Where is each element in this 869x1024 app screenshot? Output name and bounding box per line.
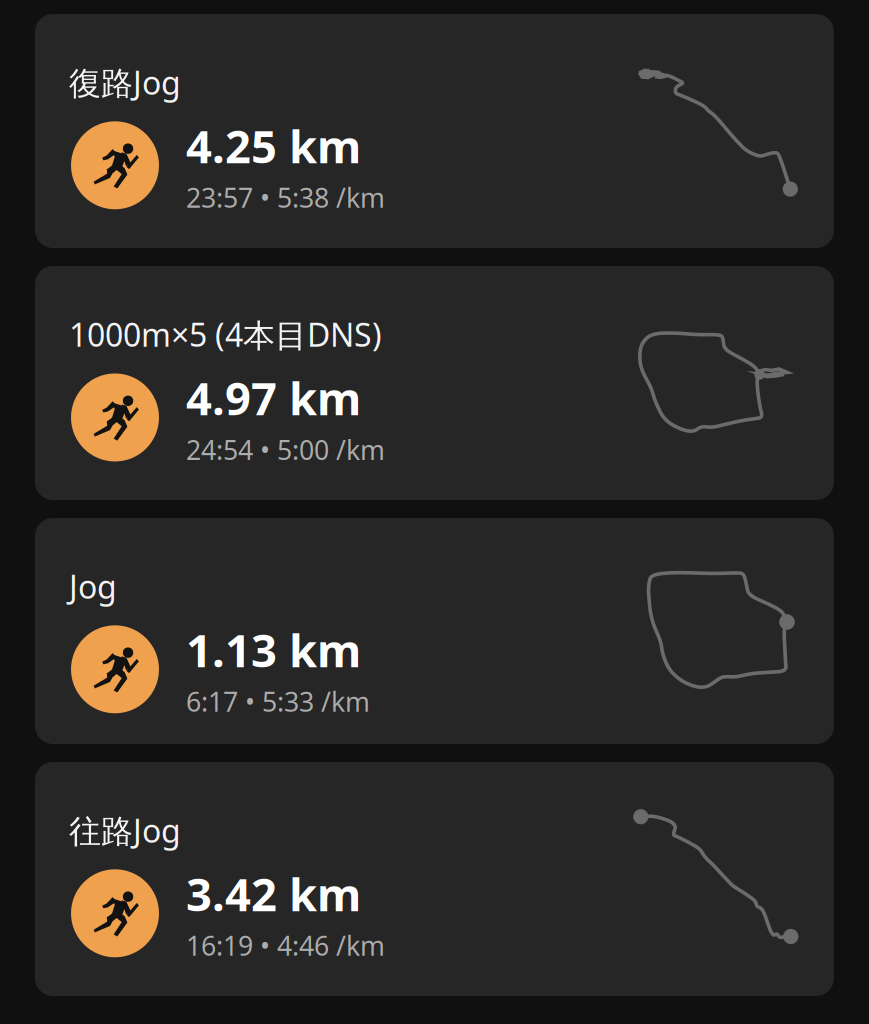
staticText: 6:17 • 5:33 /km [186,684,370,719]
button[interactable]: 復路Jog [35,14,834,248]
staticText: 4.25 km [186,115,361,176]
staticText: 1000m×5 (4本目DNS) [69,313,382,356]
button[interactable]: 往路Jog [35,762,834,996]
staticText: 3.42 km [186,863,361,924]
staticText: 23:57 • 5:38 /km [186,180,385,215]
staticText: 16:19 • 4:46 /km [186,928,385,963]
staticText: 1.13 km [186,619,361,680]
staticText: 往路Jog [69,809,181,851]
staticText: 復路Jog [69,61,181,103]
button[interactable]: Jog [35,518,834,744]
button[interactable]: 1000m×5 (4本目DNS) [35,266,834,500]
staticText: 4.97 km [186,368,361,428]
staticText: Jog [69,565,117,607]
staticText: 24:54 • 5:00 /km [186,432,385,467]
